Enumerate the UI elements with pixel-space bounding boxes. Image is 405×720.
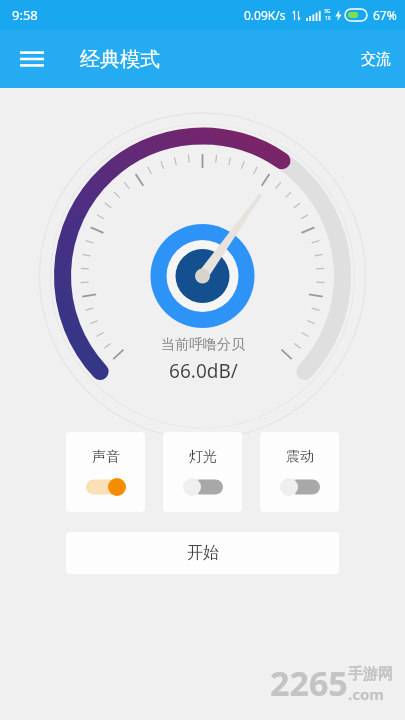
staticText: 开始: [187, 543, 219, 563]
staticText: 当前呼噜分贝: [161, 336, 245, 354]
button[interactable]: 声音: [66, 432, 145, 512]
staticText: 灯光: [189, 448, 217, 466]
staticText: 手游网: [348, 665, 393, 684]
button[interactable]: 震动: [260, 432, 339, 512]
staticText: 交流: [361, 50, 391, 69]
staticText: 经典模式: [80, 47, 160, 72]
staticText: 0.09K/s: [244, 7, 286, 23]
staticText: 2265: [270, 660, 348, 706]
staticText: 66.0dB/: [169, 358, 238, 384]
staticText: 震动: [286, 448, 314, 466]
button[interactable]: 开始: [66, 532, 339, 574]
button[interactable]: 交流: [361, 50, 391, 69]
staticText: 声音: [92, 448, 120, 466]
staticText: 67%: [373, 7, 397, 23]
staticText: 3G: [324, 8, 331, 15]
button[interactable]: Menu: [12, 39, 52, 79]
staticText: 1X: [325, 15, 331, 22]
button[interactable]: 灯光: [163, 432, 242, 512]
staticText: 9:58: [12, 6, 38, 24]
staticText: .com: [348, 684, 384, 704]
